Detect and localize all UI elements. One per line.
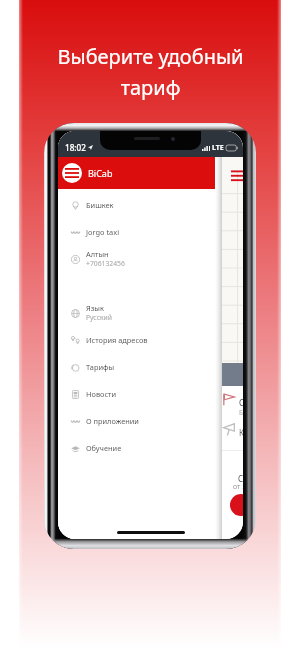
staticText: Jorgo taxi — [86, 227, 120, 237]
staticText: LTE — [212, 143, 224, 153]
button[interactable]: О приложении — [58, 407, 222, 434]
button[interactable]: Menu — [62, 163, 82, 183]
staticText: Бишкек — [86, 200, 114, 210]
staticText: BiCab — [88, 167, 113, 179]
button[interactable]: Алтын — [58, 245, 222, 272]
staticText: Алтын — [86, 249, 109, 259]
staticText: 18:02 — [65, 142, 86, 153]
staticText: Стандарт — [239, 397, 243, 408]
staticText: Стоимость поездки — [238, 473, 243, 484]
staticText: История адресов — [86, 335, 148, 345]
staticText: Обучение — [86, 443, 122, 453]
button[interactable]: Новости — [58, 380, 222, 407]
button[interactable]: История адресов — [58, 326, 222, 353]
staticText: Базовый тариф — [239, 408, 243, 417]
staticText: Выберите удобный тариф — [48, 43, 253, 101]
button[interactable]: Бишкек — [58, 191, 222, 218]
staticText: Новости — [86, 389, 117, 399]
staticText: О приложении — [86, 416, 139, 426]
button[interactable]: Обучение — [58, 434, 222, 461]
staticText: Язык — [86, 303, 104, 313]
staticText: Тарифы — [86, 362, 115, 372]
staticText: Русский — [86, 313, 113, 322]
staticText: +706132456 — [86, 259, 125, 268]
button[interactable]: Язык — [58, 299, 222, 326]
staticText: от 50 сом — [233, 482, 243, 492]
staticText: Комфорт — [239, 427, 243, 438]
button[interactable]: Тарифы — [58, 353, 222, 380]
button[interactable]: Order taxi — [230, 494, 243, 516]
button[interactable]: Jorgo taxi — [58, 218, 222, 245]
